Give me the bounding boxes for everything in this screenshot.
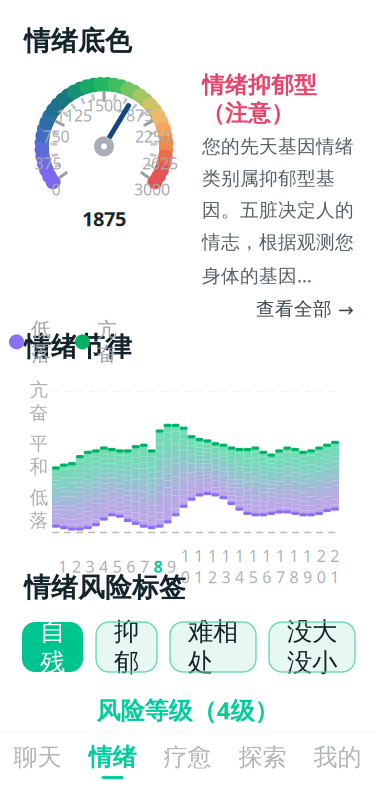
staticText: 疗愈 xyxy=(163,743,211,772)
staticText: 2 xyxy=(72,556,81,577)
staticText: 18 xyxy=(289,545,298,588)
staticText: 探索 xyxy=(238,743,286,772)
staticText: 情绪风险标签 xyxy=(24,571,186,604)
staticText: 9:41 xyxy=(24,9,69,39)
staticText: 没大没小 xyxy=(287,616,337,678)
staticText: 抑郁 xyxy=(114,616,139,678)
staticText: 15 xyxy=(249,545,258,588)
button[interactable]: 探索 xyxy=(225,733,300,789)
button[interactable]: 聊天 xyxy=(0,733,75,789)
staticText: 1500 xyxy=(86,95,122,116)
staticText: 情绪底色 xyxy=(24,25,132,57)
button[interactable]: 我的 xyxy=(300,733,375,789)
staticText: 7 xyxy=(140,556,149,577)
button[interactable]: 情绪 xyxy=(75,733,150,789)
staticText: 1125 xyxy=(56,105,92,126)
button[interactable]: 没大没小 xyxy=(269,622,355,672)
staticText: 4 xyxy=(99,556,108,577)
staticText: 难相处 xyxy=(188,616,238,678)
staticText: 亢奋 xyxy=(29,378,48,424)
staticText: 21 xyxy=(330,545,339,588)
staticText: 2250 xyxy=(135,126,171,147)
staticText: 13 xyxy=(221,545,230,588)
staticText: 风险等级（4级） xyxy=(96,694,278,726)
staticText: 平和 xyxy=(29,432,48,478)
staticText: 1875 xyxy=(117,105,153,126)
staticText: 低落 xyxy=(29,486,48,532)
button[interactable]: 查看全部 → xyxy=(202,288,354,320)
staticText: 5 xyxy=(113,556,122,577)
button[interactable]: 难相处 xyxy=(170,622,256,672)
staticText: 3000 xyxy=(134,179,170,200)
staticText: 10 xyxy=(181,545,190,588)
staticText: 查看全部 → xyxy=(256,298,354,320)
staticText: 20 xyxy=(317,545,326,588)
button[interactable]: 更多 xyxy=(272,57,357,91)
staticText: 14 xyxy=(235,545,244,588)
staticText: 低落 xyxy=(31,317,51,366)
staticText: 17 xyxy=(276,545,285,588)
staticText: 情绪抑郁型（注意） xyxy=(202,71,317,127)
staticText: 情绪 xyxy=(88,743,136,772)
staticText: 我的 xyxy=(313,743,361,772)
staticText: 聊天 xyxy=(13,743,61,772)
staticText: 9 xyxy=(167,556,176,577)
staticText: 1 xyxy=(58,556,67,577)
button[interactable]: 疗愈 xyxy=(150,733,225,789)
staticText: 11 xyxy=(194,545,203,588)
staticText: 我的情绪 xyxy=(137,58,237,89)
staticText: 16 xyxy=(262,545,271,588)
staticText: 情绪节律 xyxy=(24,330,132,363)
staticText: 3 xyxy=(85,556,94,577)
staticText: 自残 xyxy=(40,616,65,678)
staticText: 亢奋 xyxy=(97,317,117,366)
staticText: 19 xyxy=(303,545,312,588)
staticText: 6 xyxy=(126,556,135,577)
staticText: 0 xyxy=(51,179,60,200)
button[interactable]: 抑郁 xyxy=(96,622,157,672)
staticText: 您的先天基因情绪类别属抑郁型基因。五脏决定人的情志，根据观测您身体的基因… xyxy=(202,135,354,288)
button[interactable]: 自残 xyxy=(22,622,83,672)
staticText: 1875 xyxy=(82,205,126,232)
staticText: 12 xyxy=(208,545,217,588)
staticText: 375 xyxy=(34,153,61,174)
staticText: 750 xyxy=(42,126,69,147)
staticText: 8 xyxy=(153,556,162,577)
staticText: 2625 xyxy=(142,153,178,174)
